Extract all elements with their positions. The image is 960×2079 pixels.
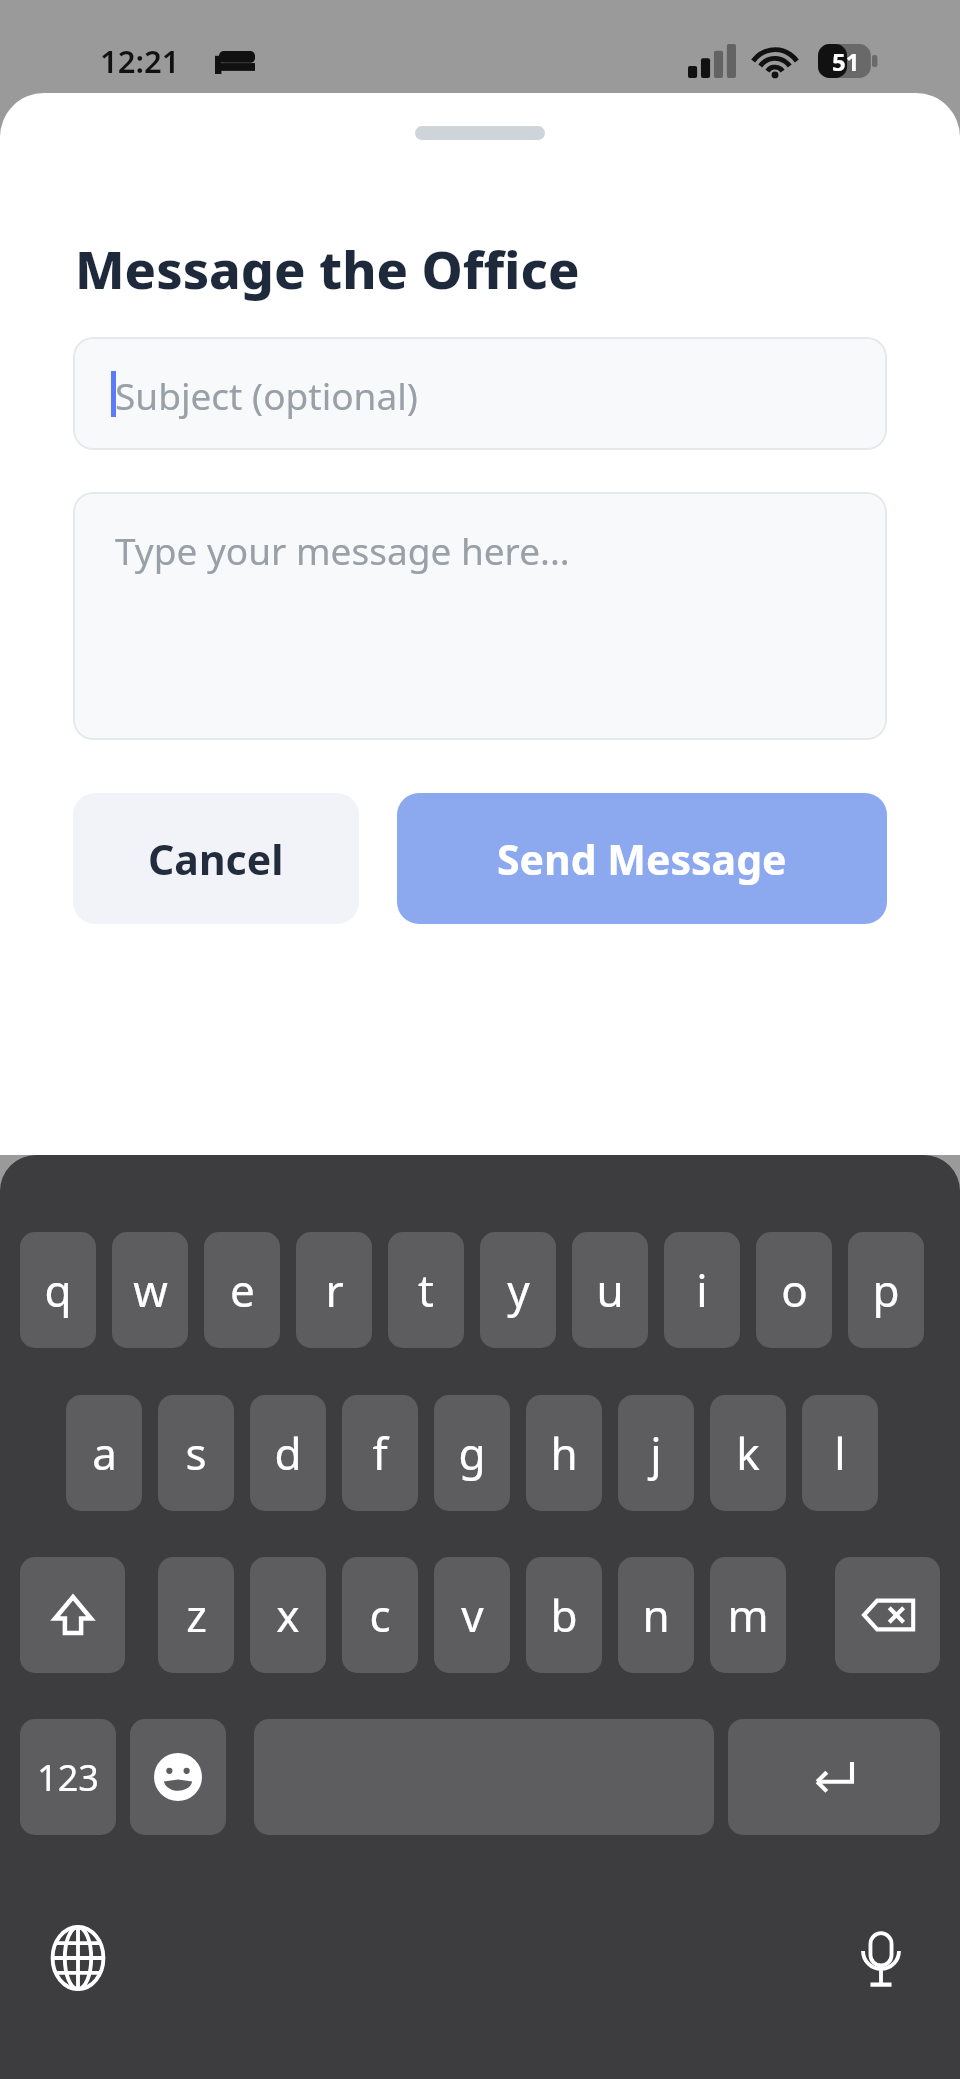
button[interactable]: r <box>296 1232 372 1348</box>
button[interactable]: v <box>434 1557 510 1673</box>
staticText: z <box>186 1585 207 1645</box>
button[interactable]: Return <box>728 1719 940 1835</box>
button[interactable]: o <box>756 1232 832 1348</box>
button[interactable]: Change keyboard language <box>45 1925 111 1991</box>
button[interactable]: b <box>526 1557 602 1673</box>
staticText: f <box>372 1423 388 1483</box>
staticText: Cancel <box>148 831 284 887</box>
button[interactable]: j <box>618 1395 694 1511</box>
button[interactable]: h <box>526 1395 602 1511</box>
staticText: m <box>727 1585 769 1645</box>
staticText: v <box>461 1585 484 1645</box>
staticText: a <box>92 1423 117 1483</box>
staticText: Message the Office <box>75 233 580 304</box>
button[interactable]: t <box>388 1232 464 1348</box>
button[interactable]: l <box>802 1395 878 1511</box>
staticText: h <box>550 1423 578 1483</box>
button[interactable]: x <box>250 1557 326 1673</box>
button[interactable]: n <box>618 1557 694 1673</box>
button[interactable]: Emoji <box>130 1719 226 1835</box>
button[interactable]: e <box>204 1232 280 1348</box>
staticText: 51 <box>832 45 860 78</box>
button[interactable]: Voice input <box>848 1925 914 1991</box>
staticText: y <box>507 1260 530 1320</box>
staticText: n <box>642 1585 670 1645</box>
staticText: p <box>872 1260 900 1320</box>
staticText: j <box>650 1423 662 1483</box>
button[interactable]: Backspace <box>835 1557 940 1673</box>
staticText: s <box>185 1423 207 1483</box>
button[interactable]: Cancel <box>73 793 359 924</box>
button[interactable]: s <box>158 1395 234 1511</box>
button[interactable]: u <box>572 1232 648 1348</box>
staticText: b <box>550 1585 578 1645</box>
button[interactable]: f <box>342 1395 418 1511</box>
staticText: u <box>596 1260 624 1320</box>
staticText: e <box>230 1260 255 1320</box>
button[interactable]: z <box>158 1557 234 1673</box>
button[interactable]: c <box>342 1557 418 1673</box>
staticText: r <box>325 1260 344 1320</box>
staticText: 12:21 <box>100 40 180 82</box>
staticText: k <box>736 1423 760 1483</box>
button[interactable]: Send Message <box>397 793 887 924</box>
button[interactable]: y <box>480 1232 556 1348</box>
button[interactable]: Type your message here... <box>73 492 887 740</box>
staticText: c <box>369 1585 391 1645</box>
staticText: Type your message here... <box>115 525 570 575</box>
staticText: w <box>133 1260 168 1320</box>
button[interactable]: a <box>66 1395 142 1511</box>
staticText: t <box>418 1260 434 1320</box>
button[interactable]: g <box>434 1395 510 1511</box>
staticText: x <box>276 1585 300 1645</box>
staticText: g <box>458 1423 486 1483</box>
button[interactable]: w <box>112 1232 188 1348</box>
button[interactable]: q <box>20 1232 96 1348</box>
button[interactable]: k <box>710 1395 786 1511</box>
button[interactable]: i <box>664 1232 740 1348</box>
button[interactable]: Shift <box>20 1557 125 1673</box>
button[interactable]: d <box>250 1395 326 1511</box>
staticText: Subject (optional) <box>115 370 418 420</box>
staticText: Send Message <box>497 831 787 887</box>
button[interactable]: p <box>848 1232 924 1348</box>
staticText: l <box>834 1423 846 1483</box>
staticText: i <box>696 1260 708 1320</box>
button[interactable]: Subject (optional) <box>73 337 887 450</box>
button[interactable]: 123 <box>20 1719 116 1835</box>
staticText: q <box>44 1260 72 1320</box>
button[interactable]: m <box>710 1557 786 1673</box>
staticText: o <box>781 1260 808 1320</box>
staticText: d <box>274 1423 302 1483</box>
staticText: 123 <box>37 1753 99 1802</box>
